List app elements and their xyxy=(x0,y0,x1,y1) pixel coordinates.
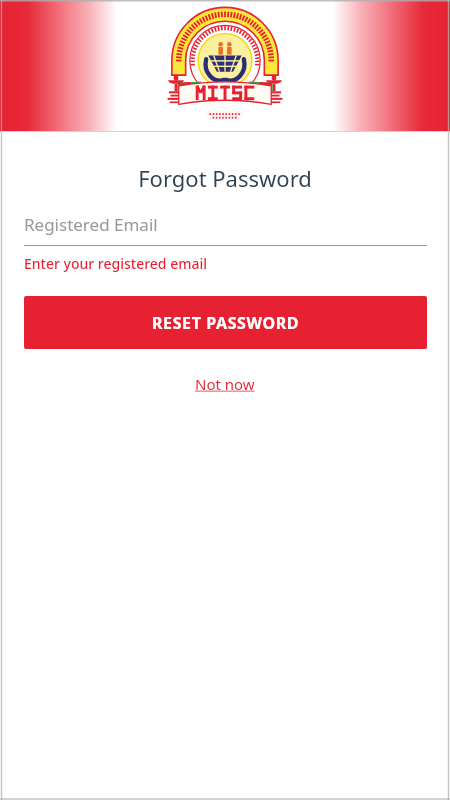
staticText: Enter your registered email xyxy=(24,254,208,273)
button[interactable]: RESET PASSWORD xyxy=(24,296,427,349)
staticText: Registered Email xyxy=(24,213,158,236)
staticText: Not now xyxy=(195,374,255,394)
staticText: RESET PASSWORD xyxy=(152,312,300,334)
staticText: Forgot Password xyxy=(0,163,450,193)
button[interactable]: Not now xyxy=(189,371,261,397)
button[interactable]: Registered Email xyxy=(24,213,427,246)
